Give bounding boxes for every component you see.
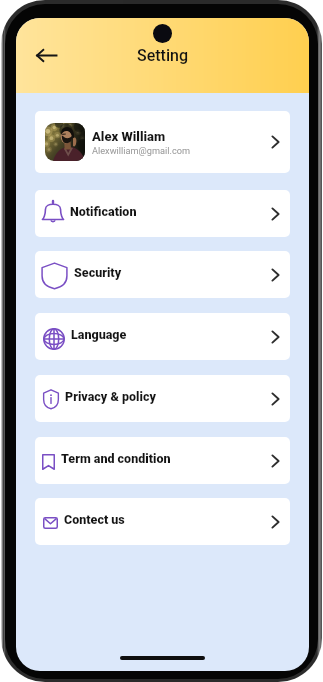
staticText: Privacy & policy (65, 389, 156, 404)
staticText: Notification (70, 204, 137, 219)
button[interactable]: Notification (35, 190, 290, 237)
button[interactable]: Back (28, 41, 64, 69)
button[interactable]: Term and condition (35, 437, 290, 484)
button[interactable]: Security (35, 251, 290, 298)
button[interactable]: Contect us (35, 498, 290, 545)
staticText: Alexwilliam@gmail.com (92, 145, 191, 156)
staticText: Alex William (92, 129, 166, 144)
button[interactable]: Alex William (35, 111, 290, 173)
staticText: Language (71, 327, 127, 342)
button[interactable]: Privacy & policy (35, 375, 290, 422)
staticText: Setting (137, 46, 188, 65)
button[interactable]: Language (35, 313, 290, 360)
staticText: Term and condition (61, 451, 171, 466)
staticText: Security (74, 265, 122, 280)
staticText: Contect us (64, 512, 125, 527)
